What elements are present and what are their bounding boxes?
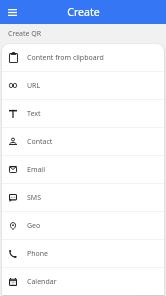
staticText: Phone bbox=[27, 249, 49, 259]
button[interactable]: Contact bbox=[2, 128, 164, 155]
button[interactable]: Geo bbox=[2, 212, 164, 239]
staticText: Email bbox=[27, 165, 45, 175]
staticText: SMS bbox=[27, 193, 42, 203]
staticText: Calendar bbox=[27, 277, 57, 287]
button[interactable]: URL bbox=[2, 72, 164, 99]
button[interactable]: Email bbox=[2, 156, 164, 183]
staticText: Geo bbox=[27, 221, 41, 231]
staticText: Contact bbox=[27, 137, 53, 147]
staticText: Create bbox=[67, 5, 100, 19]
button[interactable]: Phone bbox=[2, 240, 164, 267]
staticText: Content from clipboard bbox=[27, 53, 104, 63]
button[interactable]: Calendar bbox=[2, 268, 164, 295]
button[interactable]: Content from clipboard bbox=[2, 44, 164, 71]
staticText: URL bbox=[27, 81, 41, 91]
button[interactable]: Open navigation menu bbox=[0, 0, 25, 24]
staticText: Text bbox=[27, 109, 41, 119]
button[interactable]: SMS bbox=[2, 184, 164, 211]
button[interactable]: Text bbox=[2, 100, 164, 127]
staticText: Create QR bbox=[8, 29, 42, 39]
